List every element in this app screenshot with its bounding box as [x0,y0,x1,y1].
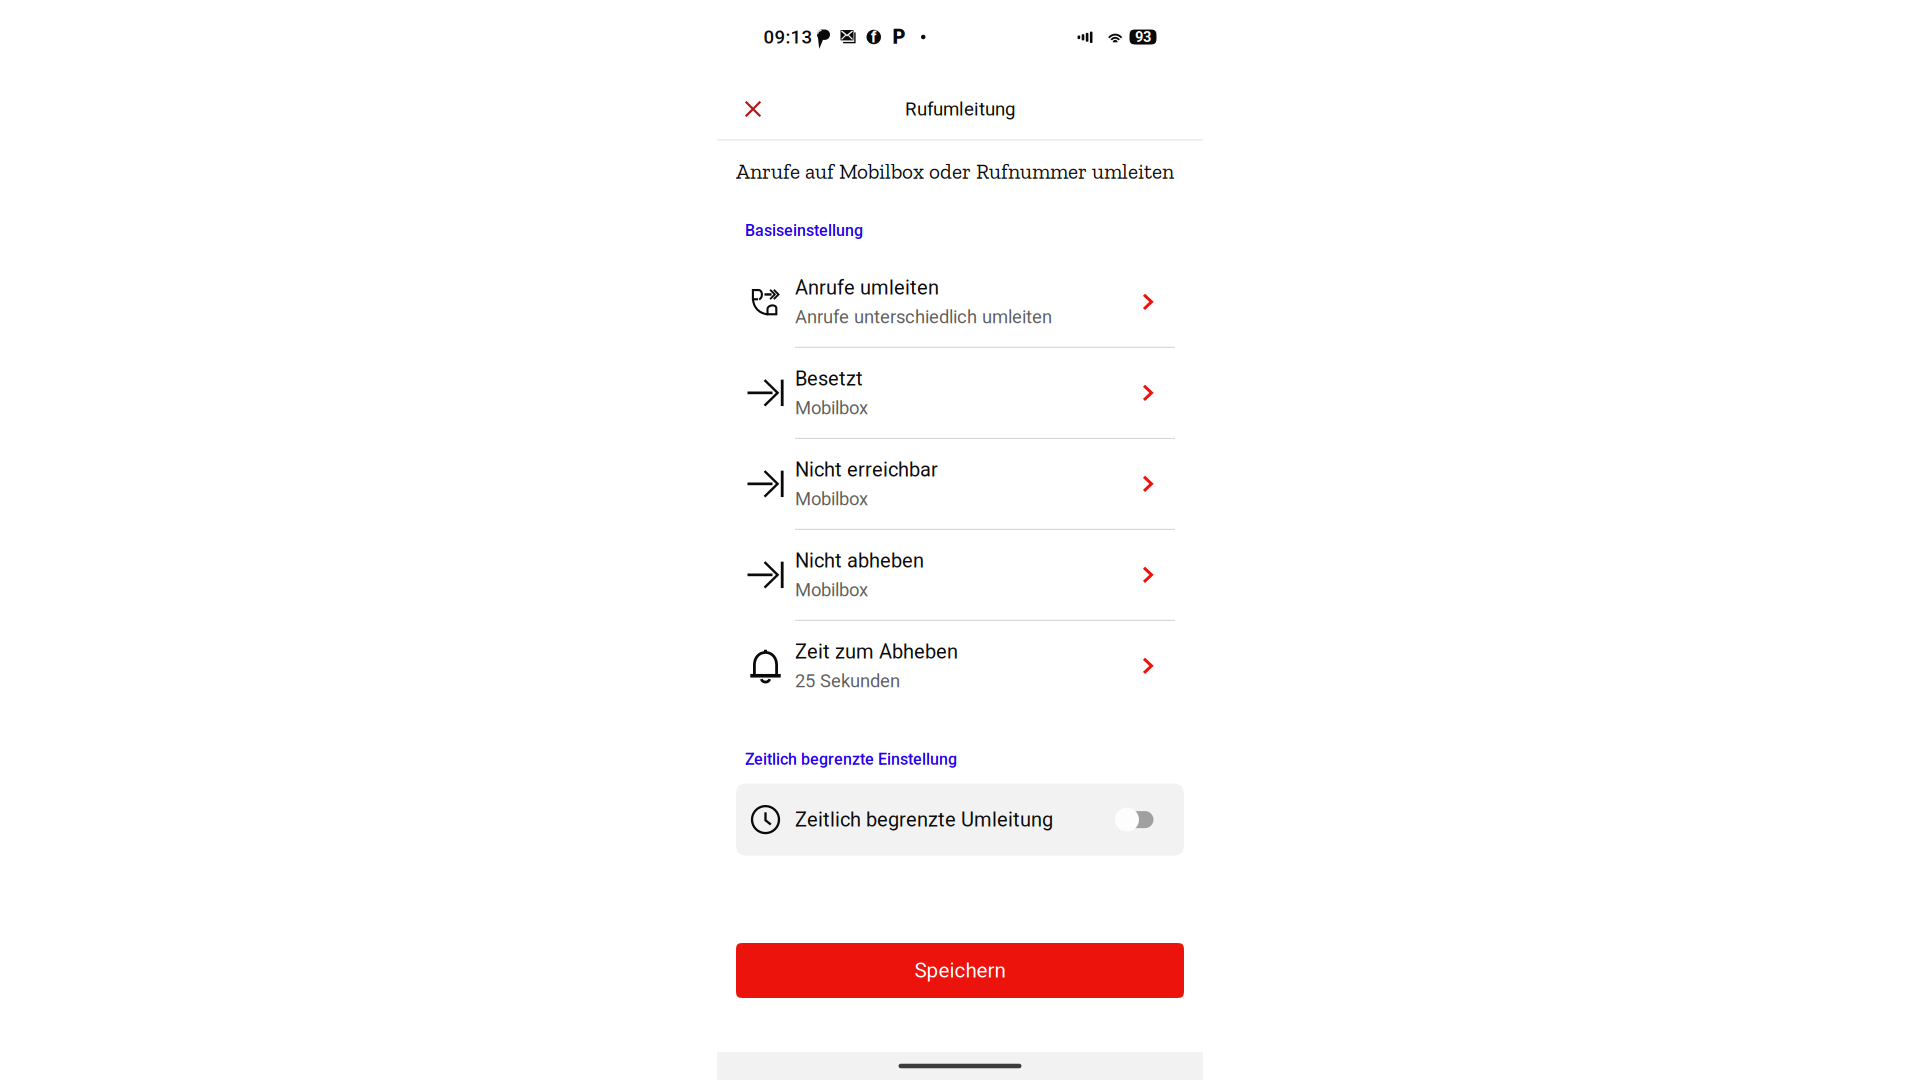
staticText: Anrufe umleiten [795,276,939,299]
staticText: Mobilbox [795,579,868,601]
button[interactable]: Nicht erreichbar [736,439,1184,529]
button[interactable]: Zeit zum Abheben [736,621,1184,711]
staticText: Zeit zum Abheben [795,640,958,663]
staticText: Mobilbox [795,397,868,419]
staticText: 25 Sekunden [795,670,900,692]
staticText: Anrufe unterschiedlich umleiten [795,306,1052,328]
button[interactable]: Besetzt [736,348,1184,438]
button[interactable]: Speichern [736,943,1184,998]
staticText: Speichern [914,958,1005,983]
button[interactable]: Zeitlich begrenzte Umleitung [736,784,1184,856]
staticText: Anrufe auf Mobilbox oder Rufnummer umlei… [736,158,1174,184]
staticText: 93 [1135,28,1151,46]
staticText: Basiseinstellung [745,221,863,240]
staticText: Zeitlich begrenzte Einstellung [745,750,957,769]
button[interactable]: Nicht abheben [736,530,1184,620]
staticText: Besetzt [795,367,863,390]
staticText: Rufumleitung [905,98,1015,120]
staticText: f [871,28,877,46]
staticText: Nicht abheben [795,549,924,572]
staticText: P [892,25,905,49]
staticText: Mobilbox [795,488,868,510]
button[interactable]: Anrufe umleiten [736,257,1184,347]
staticText: Nicht erreichbar [795,458,938,481]
button[interactable]: Schließen [737,95,769,123]
staticText: 09:13 [763,26,812,48]
staticText: Zeitlich begrenzte Umleitung [795,808,1053,831]
